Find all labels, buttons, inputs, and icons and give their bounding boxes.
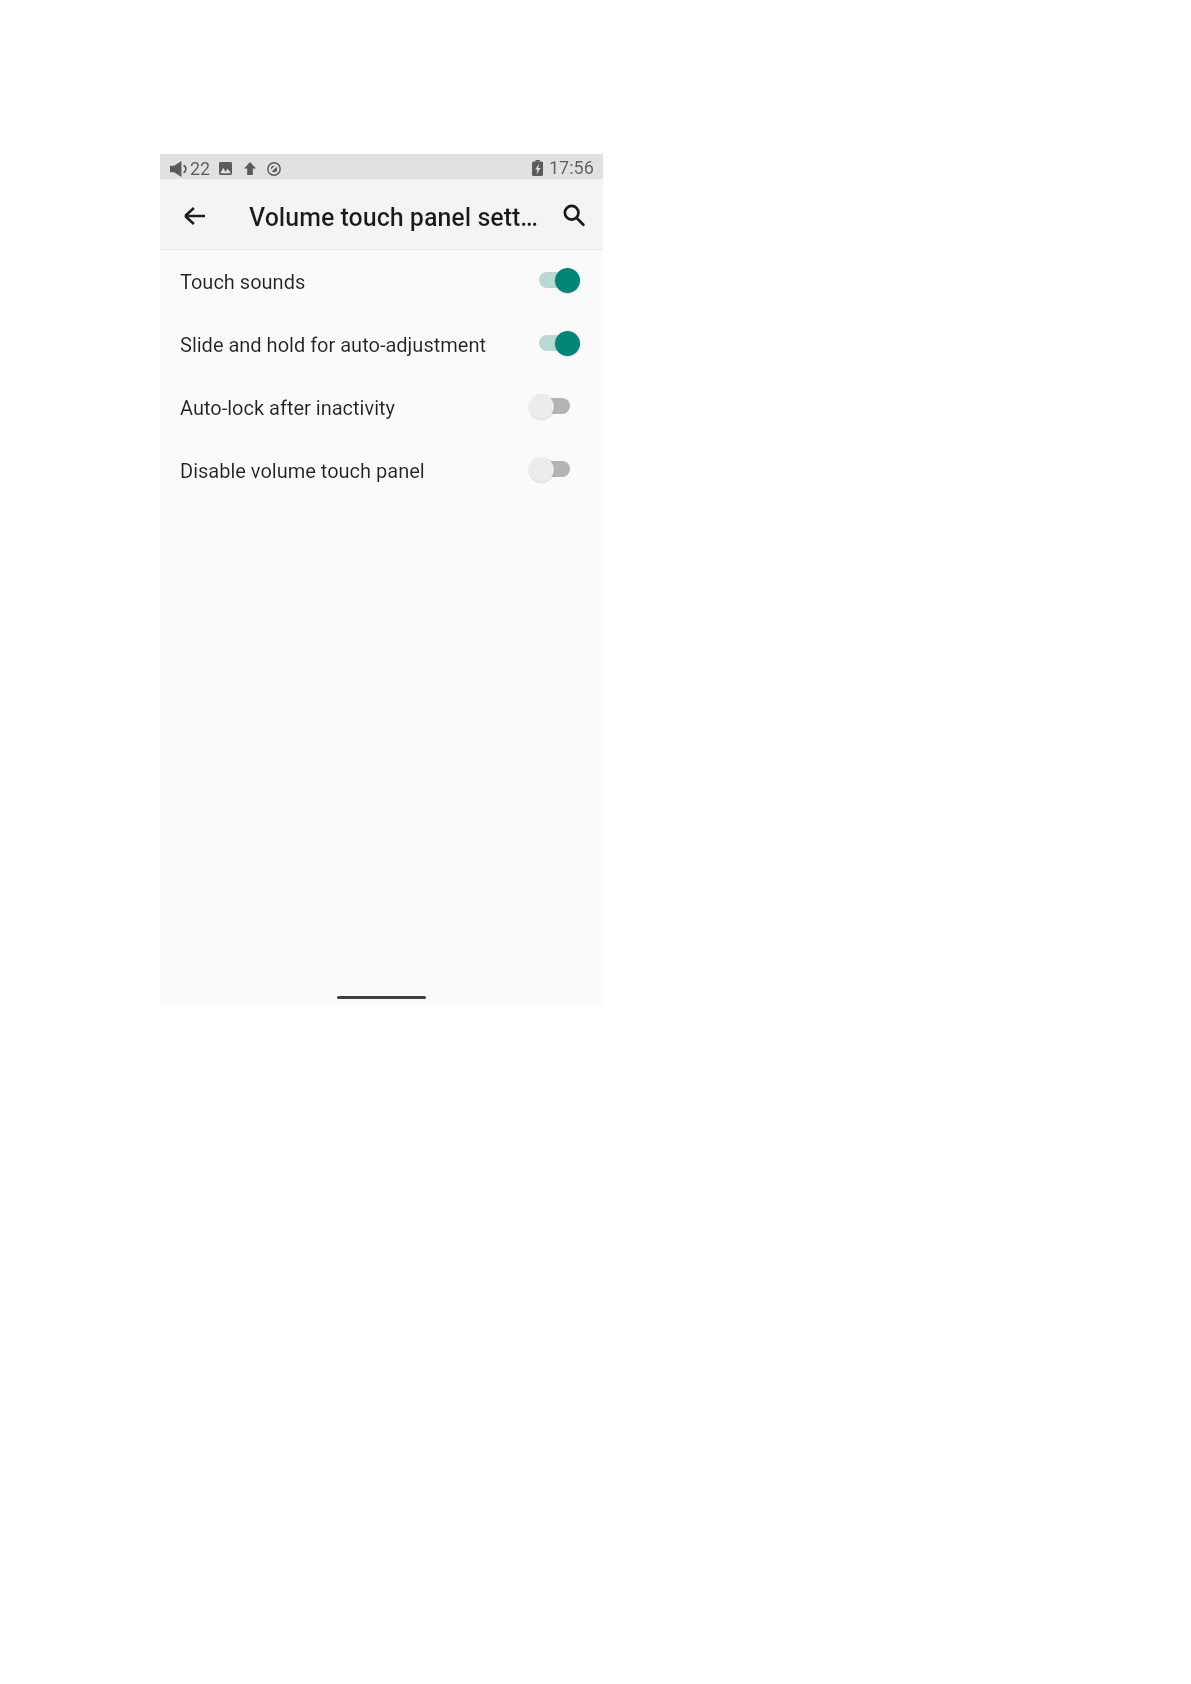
button[interactable]: Disable volume touch panel xyxy=(526,456,582,482)
staticText: Disable volume touch panel xyxy=(180,459,425,482)
button[interactable]: Slide and hold for auto-adjustment xyxy=(160,311,603,374)
button[interactable]: Disable volume touch panel xyxy=(160,437,603,500)
staticText: Slide and hold for auto-adjustment xyxy=(180,333,486,356)
staticText: Touch sounds xyxy=(180,270,306,293)
button[interactable]: Navigate up xyxy=(170,192,218,240)
button[interactable]: Auto-lock after inactivity xyxy=(160,374,603,437)
button[interactable]: Search xyxy=(549,191,597,239)
staticText: Volume touch panel sett… xyxy=(249,203,539,232)
button[interactable]: Touch sounds xyxy=(160,248,603,311)
staticText: Auto-lock after inactivity xyxy=(180,396,396,419)
staticText: 22 xyxy=(190,158,211,179)
button[interactable]: Auto-lock after inactivity xyxy=(526,393,582,419)
staticText: 17:56 xyxy=(549,157,594,178)
button[interactable]: Slide and hold for auto-adjustment xyxy=(526,330,582,356)
button[interactable]: Touch sounds xyxy=(526,267,582,293)
